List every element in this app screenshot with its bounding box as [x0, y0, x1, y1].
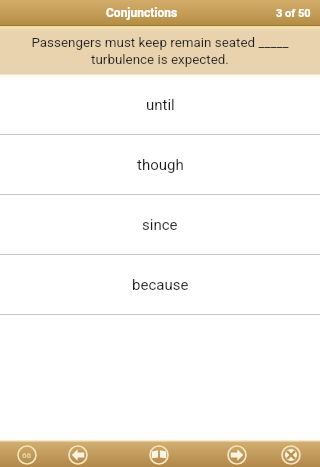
staticText: until — [146, 96, 175, 114]
staticText: Conjunctions — [106, 6, 178, 20]
button[interactable]: though — [0, 134, 320, 194]
staticText: because — [132, 276, 189, 294]
staticText: Passengers must keep remain seated _____… — [14, 35, 306, 68]
button[interactable]: Next question — [221, 442, 253, 467]
button[interactable]: Dictionary — [143, 442, 175, 467]
staticText: though — [137, 156, 184, 174]
staticText: 3 of 50 — [276, 7, 311, 20]
button[interactable]: Previous question — [62, 442, 94, 467]
button[interactable]: until — [0, 74, 320, 134]
button[interactable]: because — [0, 254, 320, 314]
staticText: 66 — [22, 451, 32, 460]
button[interactable]: Score — [11, 442, 43, 467]
staticText: since — [142, 216, 178, 234]
button[interactable]: since — [0, 194, 320, 254]
button[interactable]: Close — [275, 442, 307, 467]
